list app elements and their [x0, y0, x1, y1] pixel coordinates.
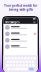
button[interactable]: Key: [33, 57, 36, 59]
button[interactable]: Key: [29, 68, 34, 70]
staticText: Your perfect match for: [4, 4, 37, 7]
button[interactable]: Key: [13, 64, 15, 67]
button[interactable]: Key: [30, 57, 33, 59]
button[interactable]: Key: [8, 57, 11, 59]
button[interactable]: Key: [32, 60, 34, 63]
button[interactable]: [3, 31, 38, 37]
staticText: 9:41: [6, 18, 9, 20]
button[interactable]: Key: [14, 57, 17, 59]
button[interactable]: Key: [29, 64, 31, 67]
button[interactable]: Key: [24, 57, 26, 59]
button[interactable]: Messages: [5, 20, 19, 24]
button[interactable]: Key: [10, 64, 12, 67]
button[interactable]: Key: [10, 60, 12, 63]
button[interactable]: Key: [29, 60, 31, 63]
button[interactable]: Key: [5, 57, 7, 59]
button[interactable]: Key: [26, 60, 28, 63]
button[interactable]: Key: [11, 57, 14, 59]
button[interactable]: Key: [22, 64, 25, 67]
button[interactable]: Key: [19, 60, 22, 63]
button[interactable]: Key: [19, 64, 22, 67]
button[interactable]: Key: [18, 57, 20, 59]
button[interactable]: [3, 37, 38, 43]
button[interactable]: Key: [16, 64, 19, 67]
button[interactable]: Key: [32, 64, 35, 67]
button[interactable]: Key: [7, 60, 9, 63]
button[interactable]: New message: [33, 21, 36, 23]
button[interactable]: Key: [13, 60, 15, 63]
button[interactable]: Key: [6, 64, 9, 67]
button[interactable]: [3, 43, 38, 50]
button[interactable]: Key: [16, 60, 19, 63]
staticText: Messages: [5, 20, 19, 24]
button[interactable]: Key: [26, 64, 28, 67]
staticText: timing with gifts: [8, 8, 32, 11]
button[interactable]: Key: [21, 57, 23, 59]
button[interactable]: [3, 24, 38, 31]
button[interactable]: Key: [27, 57, 30, 59]
button[interactable]: Key: [22, 60, 25, 63]
